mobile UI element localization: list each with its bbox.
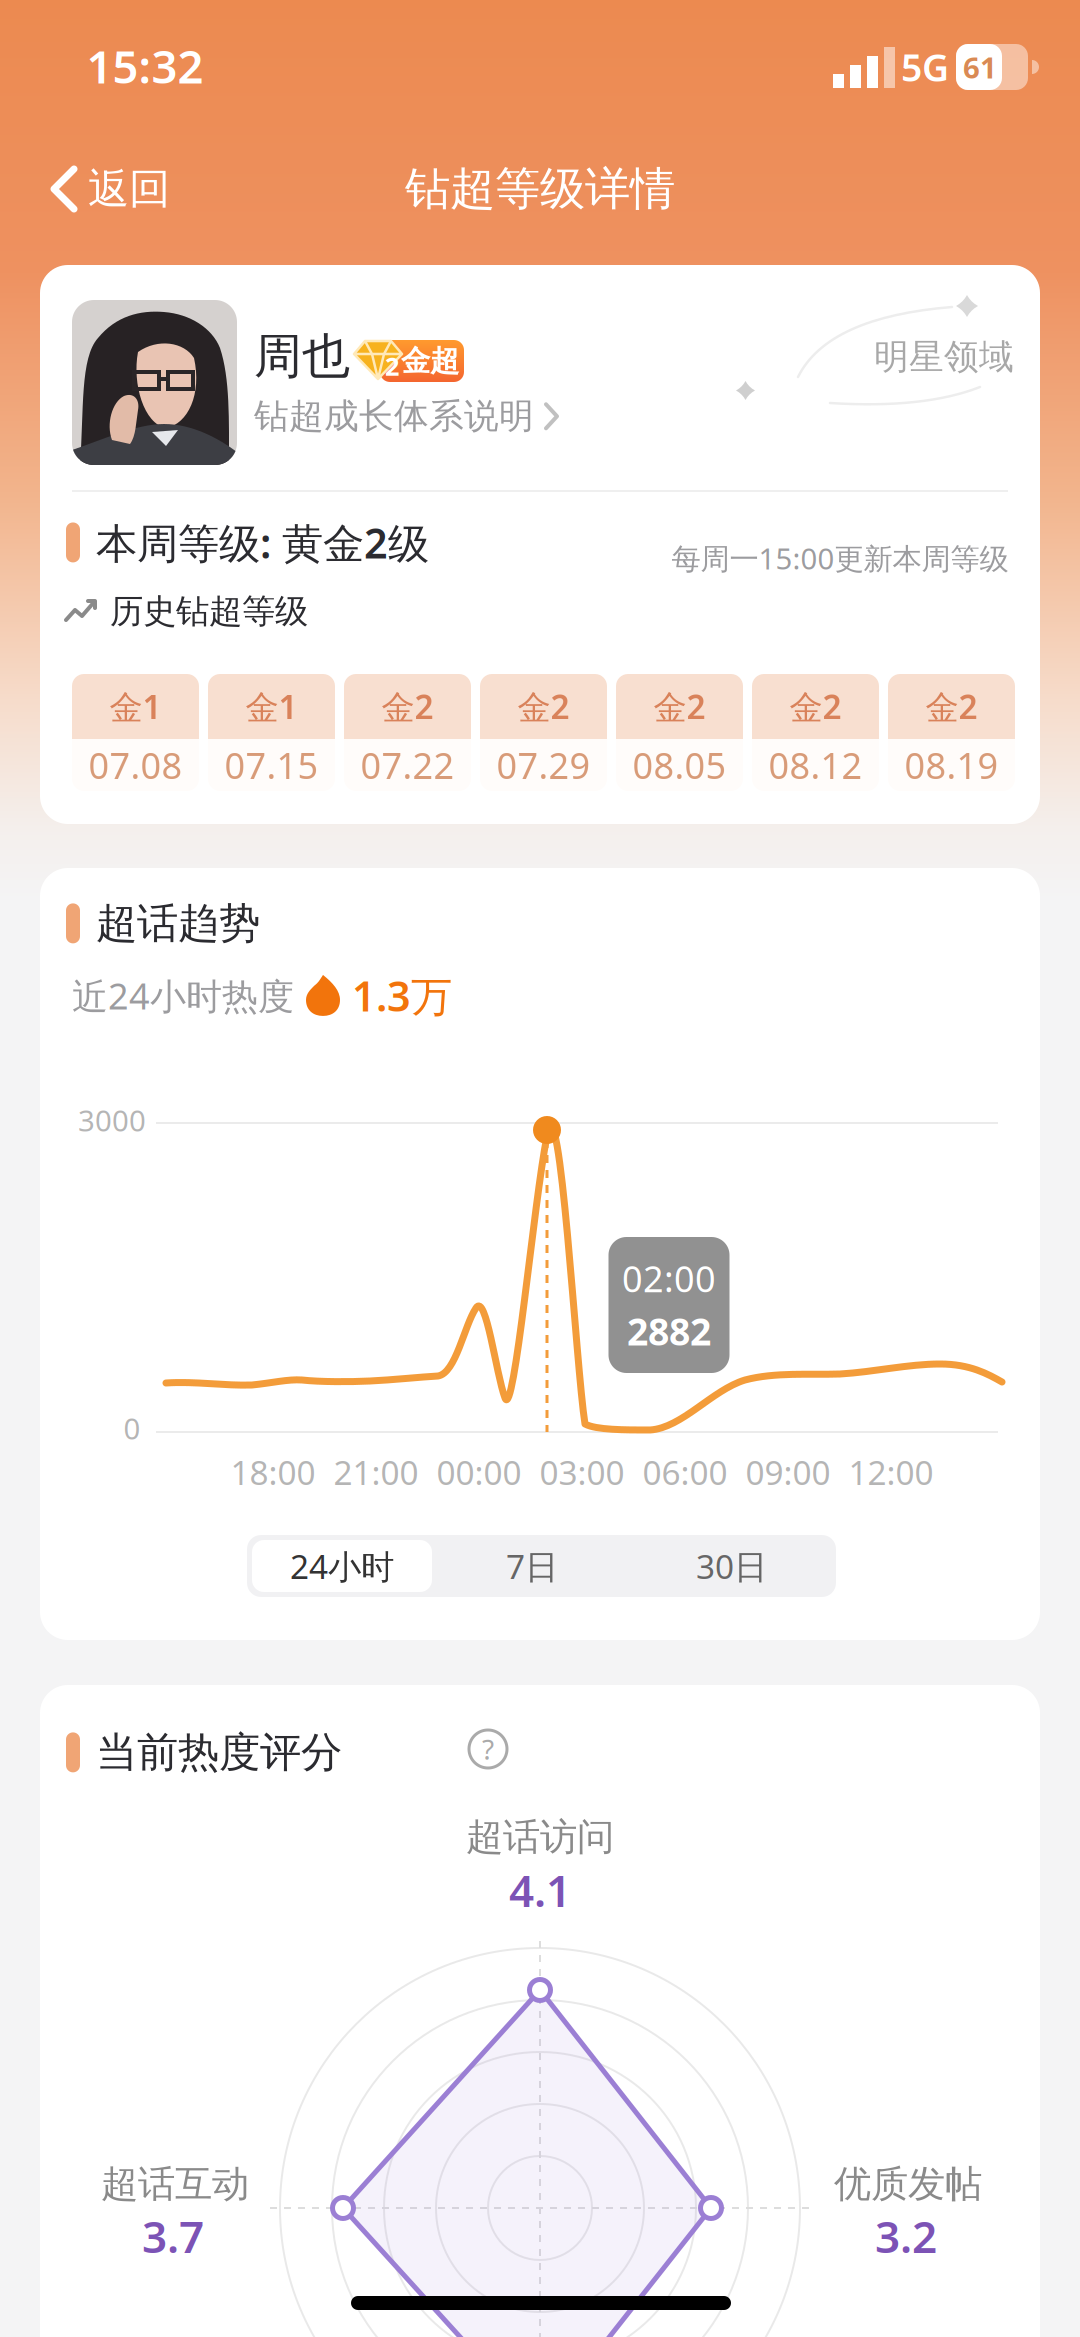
staticText: 08.05	[632, 741, 726, 789]
staticText: 02:00	[622, 1254, 716, 1302]
staticText: 2882	[627, 1306, 711, 1356]
staticText: 12:00	[848, 1450, 933, 1494]
staticText: 18:00	[230, 1450, 315, 1494]
staticText: 金2	[653, 684, 705, 729]
staticText: 超话互动	[101, 2161, 249, 2207]
staticText: 本周等级: 黄金2级	[96, 515, 429, 570]
staticText: 金超	[401, 343, 459, 379]
staticText: 2	[385, 349, 399, 383]
staticText: 近24小时热度	[72, 971, 294, 1019]
staticText: 24小时	[290, 1544, 394, 1588]
staticText: 3.7	[142, 2207, 204, 2265]
staticText: 61	[963, 47, 997, 86]
staticText: 7日	[506, 1544, 558, 1588]
staticText: 钻超等级详情	[405, 161, 675, 217]
staticText: 07.22	[360, 741, 454, 789]
staticText: 周也	[254, 327, 350, 386]
staticText: 金2	[925, 684, 977, 729]
staticText: 金2	[381, 684, 433, 729]
staticText: 返回	[88, 164, 170, 214]
staticText: 0	[123, 1408, 140, 1447]
staticText: 03:00	[539, 1450, 624, 1494]
staticText: 07.29	[496, 741, 590, 789]
button[interactable]: 评分说明	[469, 1730, 507, 1768]
staticText: ?	[482, 1730, 494, 1768]
staticText: 4.1	[509, 1861, 571, 1919]
staticText: 金1	[245, 684, 297, 729]
staticText: 00:00	[436, 1450, 521, 1494]
button[interactable]: 7日	[437, 1535, 627, 1597]
staticText: 明星领域	[874, 336, 1014, 378]
staticText: 历史钻超等级	[110, 591, 308, 632]
staticText: 3.2	[875, 2207, 937, 2265]
staticText: 06:00	[642, 1450, 727, 1494]
staticText: 07.08	[88, 741, 182, 789]
staticText: 08.19	[904, 741, 998, 789]
button[interactable]: 30日	[627, 1535, 836, 1597]
staticText: 金1	[109, 684, 161, 729]
staticText: 3000	[78, 1100, 146, 1139]
staticText: 超话访问	[466, 1814, 614, 1860]
staticText: 当前热度评分	[96, 1727, 342, 1778]
staticText: 21:00	[333, 1450, 418, 1494]
staticText: 30日	[696, 1544, 767, 1588]
staticText: 15:32	[86, 36, 203, 96]
staticText: 超话趋势	[96, 898, 260, 949]
staticText: 09:00	[745, 1450, 830, 1494]
staticText: 1.3万	[352, 968, 452, 1023]
staticText: 金2	[789, 684, 841, 729]
staticText: 07.15	[224, 741, 318, 789]
staticText: 金2	[517, 684, 569, 729]
staticText: 5G	[901, 42, 949, 92]
staticText: 钻超成长体系说明	[254, 395, 534, 438]
button[interactable]: 24小时	[247, 1535, 437, 1597]
button[interactable]: 返回	[50, 164, 170, 214]
staticText: 优质发帖	[834, 2161, 982, 2207]
button[interactable]: 钻超成长体系说明	[254, 395, 559, 438]
staticText: 每周一15:00更新本周等级	[671, 538, 1008, 577]
staticText: 08.12	[768, 741, 862, 789]
